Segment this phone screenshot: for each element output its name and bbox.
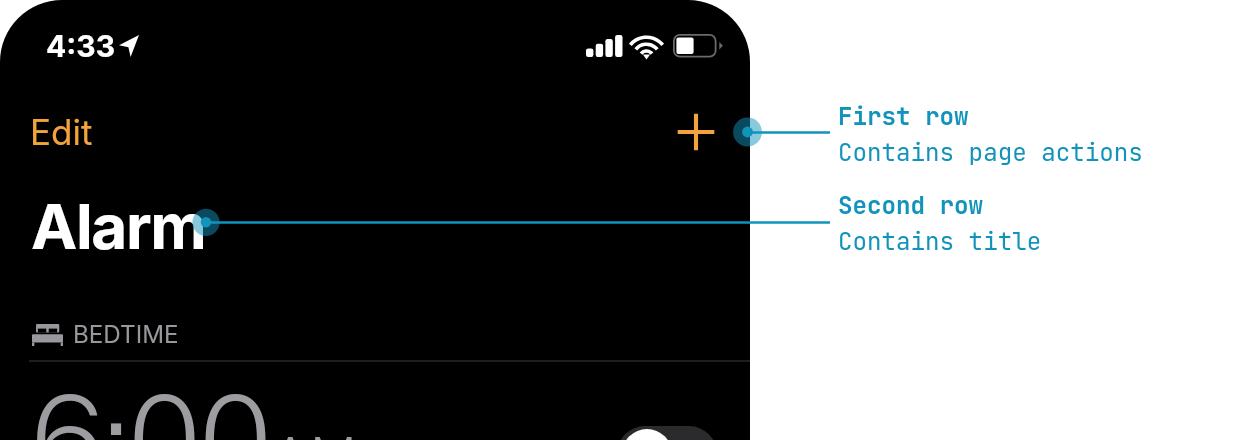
- staticText: 6:00: [31, 368, 272, 440]
- staticText: Contains title: [838, 222, 1042, 258]
- staticText: First row: [838, 97, 969, 133]
- staticText: 4:33: [46, 28, 116, 64]
- button[interactable]: Add alarm: [672, 108, 720, 156]
- button[interactable]: Toggle bedtime alarm: [617, 426, 717, 440]
- staticText: AM: [271, 425, 358, 440]
- staticText: Edit: [30, 111, 93, 153]
- button[interactable]: Edit: [18, 105, 105, 159]
- button[interactable]: Bedtime section: [32, 320, 179, 349]
- staticText: Contains page actions: [838, 133, 1143, 169]
- staticText: BEDTIME: [73, 320, 179, 349]
- staticText: Second row: [838, 186, 984, 222]
- staticText: Alarm: [31, 189, 206, 264]
